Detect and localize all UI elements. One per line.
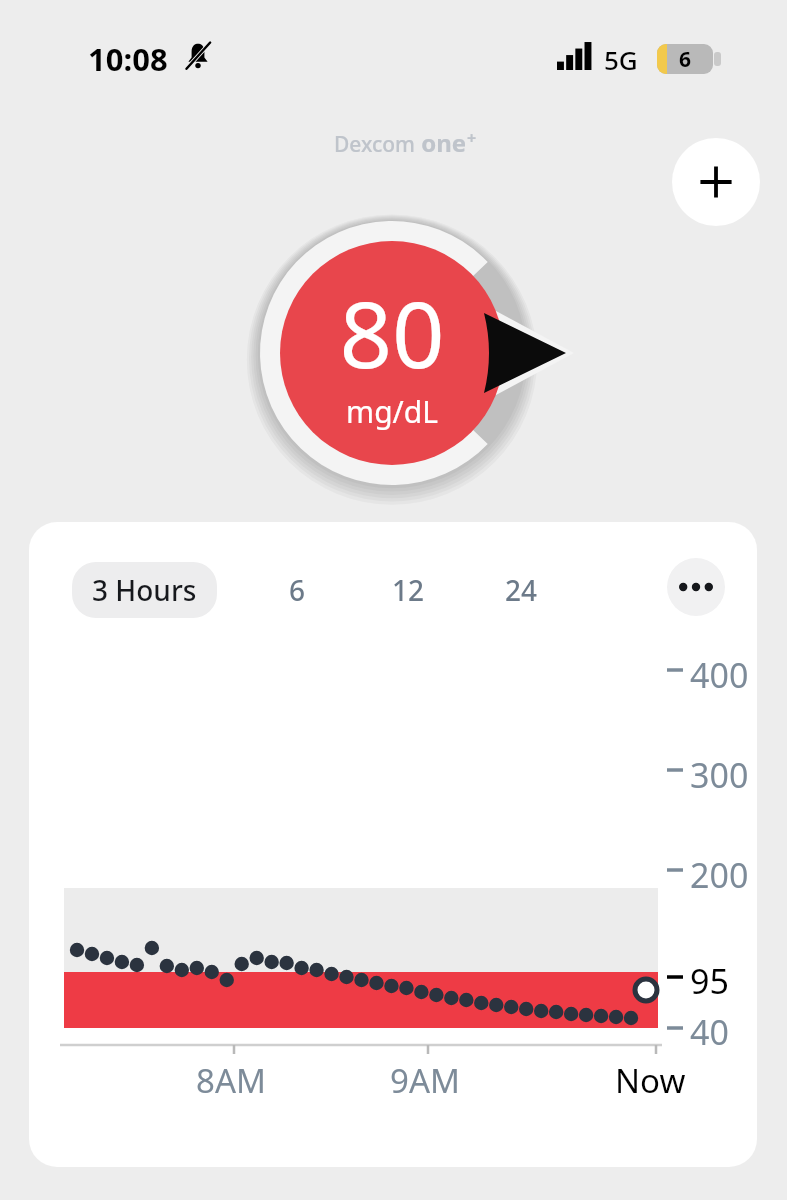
button[interactable]: Glucose 80 mg/dL, falling: [252, 208, 592, 498]
staticText: one: [415, 126, 467, 159]
button[interactable]: More options: [667, 558, 725, 616]
staticText: 5G: [604, 42, 638, 77]
staticText: Now: [615, 1058, 686, 1103]
staticText: 6: [289, 571, 306, 609]
staticText: 80: [339, 270, 445, 395]
staticText: 40: [690, 1009, 729, 1055]
button[interactable]: 3 Hours: [72, 562, 217, 618]
staticText: 400: [690, 652, 749, 698]
staticText: 10:08: [88, 38, 168, 80]
staticText: 3 Hours: [92, 571, 197, 609]
staticText: 12: [392, 571, 425, 609]
staticText: Dexcom: [334, 130, 415, 159]
staticText: 300: [690, 752, 749, 798]
staticText: 9AM: [390, 1058, 460, 1103]
staticText: 6: [679, 45, 692, 74]
staticText: 95: [690, 958, 729, 1004]
staticText: 200: [690, 852, 749, 898]
staticText: 8AM: [196, 1058, 266, 1103]
staticText: mg/dL: [346, 391, 438, 432]
button[interactable]: 12: [378, 562, 439, 618]
button[interactable]: 24: [491, 562, 552, 618]
staticText: +: [467, 127, 477, 149]
button[interactable]: 6: [275, 562, 320, 618]
button[interactable]: Add event: [672, 138, 760, 226]
staticText: 24: [505, 571, 538, 609]
